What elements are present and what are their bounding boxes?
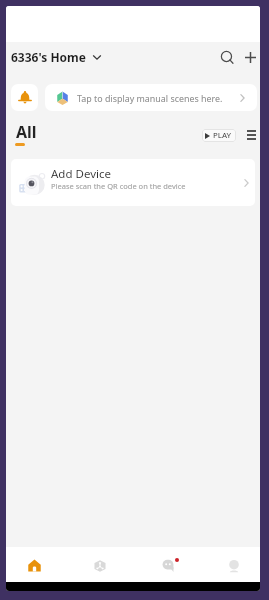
button[interactable]: PLAY — [202, 129, 236, 142]
button[interactable]: Home — [18, 547, 50, 582]
button[interactable]: Menu — [242, 126, 260, 144]
button[interactable]: Search — [215, 42, 239, 72]
button[interactable]: Add Device — [11, 159, 255, 206]
staticText: Tap to display manual scenes here. — [77, 92, 223, 104]
button[interactable]: Messages — [152, 547, 184, 582]
staticText: All — [16, 121, 37, 143]
button[interactable]: Add — [238, 42, 260, 72]
button[interactable]: Tap to display manual scenes here. — [45, 84, 257, 111]
button[interactable]: 6336's Home — [6, 45, 106, 69]
button[interactable]: Notifications — [11, 84, 38, 111]
staticText: Please scan the QR code on the device — [51, 181, 186, 191]
button[interactable]: All — [11, 117, 35, 151]
button[interactable]: Profile — [218, 547, 250, 582]
staticText: PLAY — [213, 130, 232, 141]
staticText: Add Device — [51, 166, 111, 182]
staticText: 6336's Home — [11, 49, 86, 65]
button[interactable]: Devices — [84, 547, 116, 582]
